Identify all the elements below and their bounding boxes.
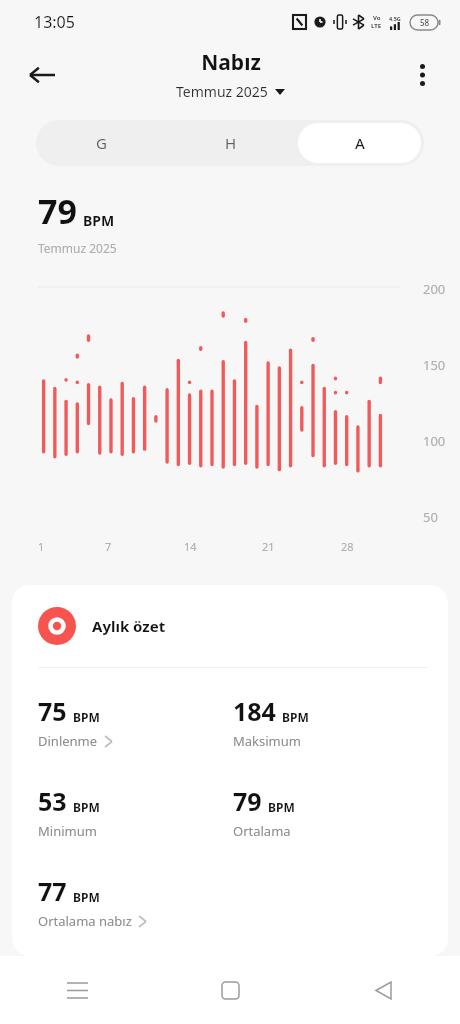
staticText: 184: [233, 694, 276, 728]
staticText: 14: [184, 539, 197, 554]
staticText: Nabız: [201, 48, 261, 77]
staticText: 77: [38, 874, 67, 908]
staticText: 79: [38, 188, 77, 234]
staticText: BPM: [268, 799, 295, 815]
staticText: 1: [38, 539, 45, 554]
staticText: 28: [341, 539, 354, 554]
staticText: BPM: [73, 799, 100, 815]
staticText: 7: [105, 539, 112, 554]
staticText: 58: [420, 17, 430, 28]
staticText: BPM: [282, 709, 309, 725]
staticText: Ortalama nabız: [38, 912, 132, 930]
staticText: 4.5G: [389, 15, 401, 22]
staticText: 150: [423, 356, 446, 374]
staticText: Dinlenme: [38, 732, 98, 750]
button[interactable]: More options: [400, 53, 444, 97]
staticText: 79: [233, 784, 262, 818]
staticText: Temmuz 2025: [176, 82, 268, 101]
button[interactable]: Home: [154, 956, 307, 1024]
staticText: Ortalama: [233, 822, 291, 840]
staticText: BPM: [83, 211, 115, 230]
staticText: G: [96, 133, 107, 153]
staticText: BPM: [73, 709, 100, 725]
button[interactable]: G: [39, 123, 163, 163]
button[interactable]: Aylık özet: [38, 607, 166, 645]
staticText: 100: [423, 432, 446, 450]
staticText: 50: [423, 508, 438, 526]
button[interactable]: A: [298, 123, 421, 163]
staticText: Maksimum: [233, 732, 301, 750]
staticText: LTE: [371, 22, 382, 30]
button[interactable]: 75: [38, 694, 118, 750]
button[interactable]: 77: [38, 874, 152, 930]
staticText: 53: [38, 784, 67, 818]
staticText: 21: [262, 539, 275, 554]
staticText: 13:05: [34, 11, 75, 33]
staticText: Minimum: [38, 822, 97, 840]
staticText: BPM: [73, 889, 100, 905]
staticText: 75: [38, 694, 67, 728]
button[interactable]: Recent apps: [0, 956, 154, 1024]
staticText: Temmuz 2025: [38, 240, 117, 256]
button[interactable]: Back: [307, 956, 460, 1024]
button[interactable]: H: [169, 123, 292, 163]
staticText: Vo: [373, 14, 381, 22]
button[interactable]: Back: [18, 51, 66, 99]
button[interactable]: Temmuz 2025: [172, 80, 289, 103]
staticText: 200: [423, 280, 446, 298]
staticText: A: [355, 133, 365, 153]
staticText: H: [225, 133, 237, 153]
staticText: Aylık özet: [92, 616, 166, 636]
